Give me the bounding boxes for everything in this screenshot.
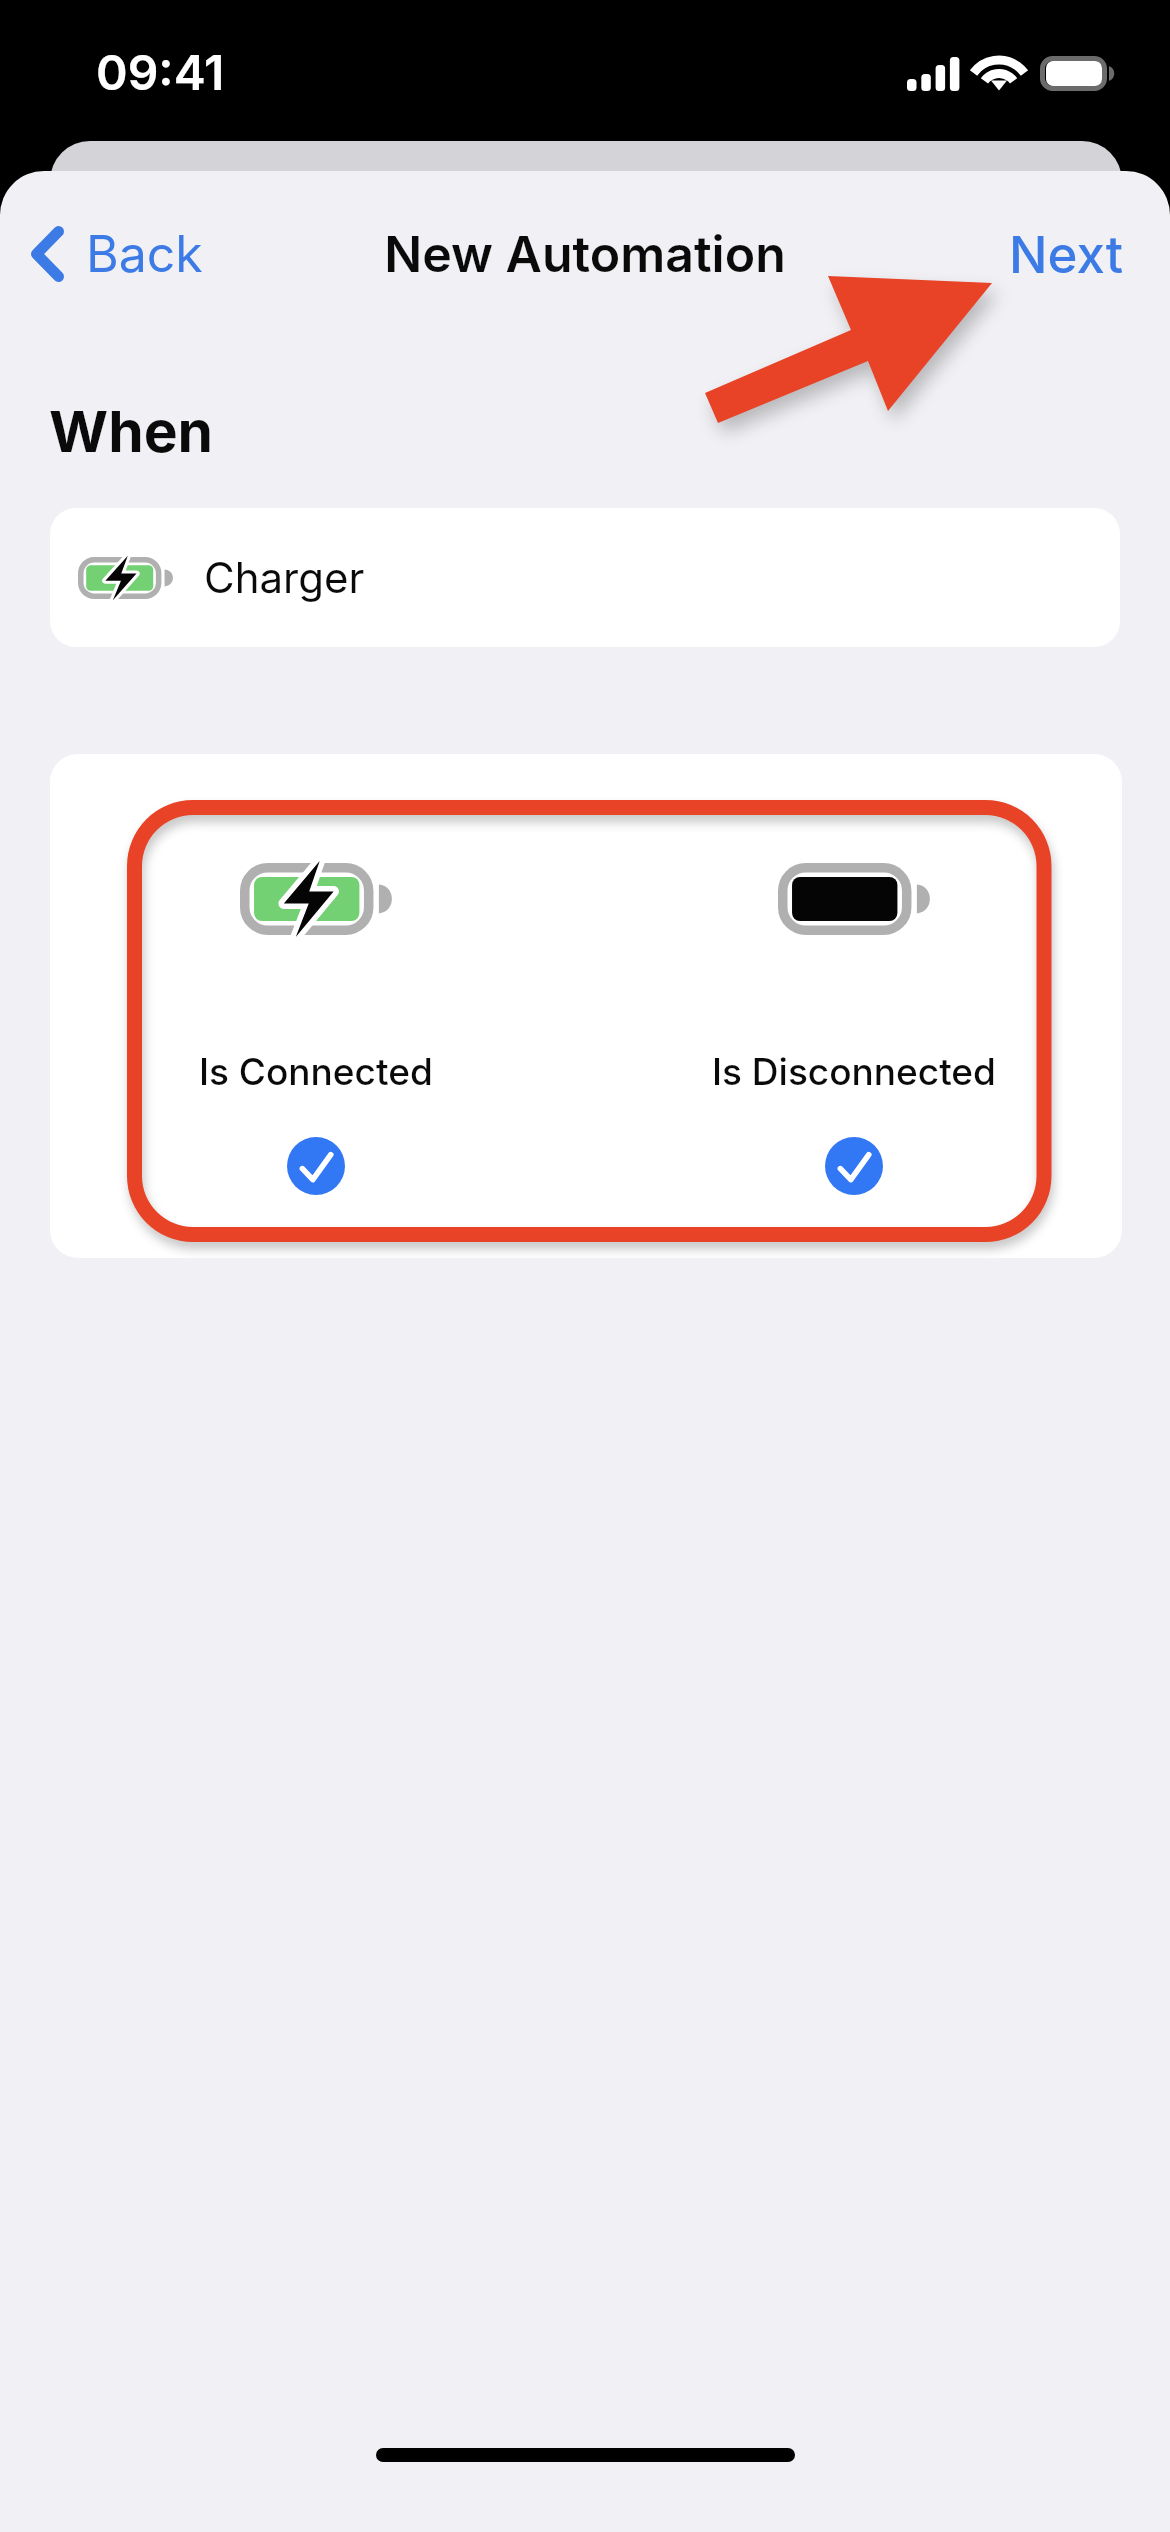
staticText: Next — [1009, 224, 1124, 286]
button[interactable]: Charger disconnected — [634, 863, 1074, 1223]
button[interactable]: Charger connected — [96, 863, 536, 1223]
staticText: 09:41 — [96, 43, 225, 101]
button[interactable]: Back — [19, 212, 215, 296]
other: Selected — [825, 1137, 883, 1195]
staticText: Charger — [204, 552, 365, 603]
staticText: Back — [86, 224, 203, 284]
staticText: Is Disconnected — [712, 1049, 996, 1094]
staticText: New Automation — [0, 224, 1170, 284]
button[interactable]: Next — [997, 212, 1136, 298]
staticText: When — [49, 397, 214, 466]
staticText: Is Connected — [199, 1049, 433, 1094]
other: Charger disconnected — [778, 863, 930, 935]
other: Selected — [287, 1137, 345, 1195]
button[interactable]: Charger — [50, 508, 1120, 647]
other: Charger connected — [240, 863, 392, 935]
